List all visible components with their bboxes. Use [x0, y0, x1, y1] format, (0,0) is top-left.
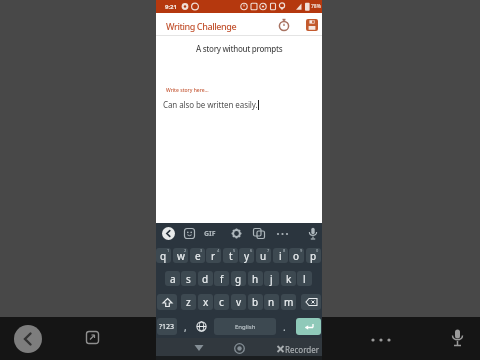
button[interactable]: f	[214, 271, 229, 286]
button[interactable]: g	[231, 271, 246, 286]
button[interactable]: e	[190, 248, 205, 263]
button[interactable]	[162, 227, 175, 240]
staticText: k	[286, 272, 292, 286]
button[interactable]: .	[279, 318, 290, 335]
button[interactable]	[307, 227, 319, 241]
staticText: 6	[250, 248, 253, 253]
staticText: s	[186, 272, 191, 286]
button[interactable]: x	[198, 294, 213, 310]
staticText: .	[283, 320, 286, 334]
button[interactable]	[277, 18, 291, 32]
button[interactable]: m	[281, 294, 296, 310]
staticText: c	[219, 295, 224, 309]
staticText: p	[310, 249, 317, 263]
staticText: v	[236, 295, 242, 309]
staticText: i	[279, 249, 282, 263]
button[interactable]: A story without prompts	[156, 42, 322, 54]
button[interactable]	[449, 328, 466, 349]
button[interactable]: q	[156, 248, 171, 263]
staticText: w	[177, 249, 185, 263]
button[interactable]: n	[264, 294, 279, 310]
staticText: Recorder	[285, 344, 320, 355]
button[interactable]: v	[231, 294, 246, 310]
staticText: 7	[267, 248, 270, 253]
button[interactable]: u	[256, 248, 271, 263]
button[interactable]	[156, 80, 322, 223]
staticText: ?123	[159, 322, 175, 332]
button[interactable]: English	[214, 318, 276, 335]
button[interactable]: ,	[179, 318, 191, 335]
button[interactable]	[86, 331, 99, 344]
staticText: Write story here...	[166, 87, 209, 94]
button[interactable]: z	[181, 294, 196, 310]
button[interactable]: ?123	[157, 318, 177, 335]
button[interactable]: c	[214, 294, 229, 310]
button[interactable]	[253, 228, 265, 239]
button[interactable]: l	[297, 271, 312, 286]
staticText: 9:21	[165, 3, 177, 11]
button[interactable]: s	[181, 271, 196, 286]
button[interactable]: y	[239, 248, 254, 263]
button[interactable]	[194, 344, 204, 352]
staticText: a	[170, 272, 176, 286]
button[interactable]	[184, 228, 195, 239]
staticText: x	[203, 295, 209, 309]
staticText: y	[244, 249, 250, 263]
staticText: f	[220, 272, 224, 286]
button[interactable]: k	[281, 271, 296, 286]
button[interactable]: i	[273, 248, 288, 263]
staticText: 2	[184, 248, 187, 253]
staticText: Can also be written easily.	[163, 99, 258, 110]
staticText: 0	[316, 248, 319, 253]
staticText: o	[293, 249, 300, 263]
staticText: 1	[167, 248, 170, 253]
button[interactable]: a	[165, 271, 180, 286]
button[interactable]: j	[264, 271, 279, 286]
staticText: u	[260, 249, 267, 263]
button[interactable]: GIF	[204, 229, 216, 239]
staticText: r	[211, 249, 216, 263]
button[interactable]: b	[248, 294, 263, 310]
button[interactable]	[14, 325, 42, 353]
staticText: ,	[184, 320, 187, 334]
staticText: g	[235, 272, 242, 286]
staticText: 3	[200, 248, 203, 253]
button[interactable]: r	[206, 248, 221, 263]
staticText: b	[252, 295, 259, 309]
button[interactable]: p	[306, 248, 321, 263]
staticText: q	[160, 249, 167, 263]
button[interactable]: h	[248, 271, 263, 286]
button[interactable]: t	[223, 248, 238, 263]
staticText: l	[303, 272, 306, 286]
staticText: 4	[217, 248, 220, 253]
staticText: 5	[233, 248, 236, 253]
staticText: m	[284, 295, 294, 309]
staticText: h	[252, 272, 259, 286]
button[interactable]	[157, 294, 177, 310]
button[interactable]	[276, 231, 290, 237]
staticText: Writing Challenge	[166, 20, 237, 32]
staticText: t	[229, 249, 233, 263]
button[interactable]: o	[289, 248, 304, 263]
staticText: d	[202, 272, 209, 286]
button[interactable]	[306, 19, 318, 31]
button[interactable]	[234, 343, 245, 354]
staticText: 8	[283, 248, 286, 253]
button[interactable]	[301, 294, 321, 310]
staticText: GIF	[204, 229, 216, 239]
staticText: e	[195, 249, 201, 263]
button[interactable]	[296, 318, 321, 335]
staticText: 9	[300, 248, 303, 253]
staticText: n	[268, 295, 275, 309]
staticText: A story without prompts	[196, 43, 283, 54]
staticText: 78%	[311, 3, 321, 10]
button[interactable]: d	[198, 271, 213, 286]
staticText: z	[186, 295, 191, 309]
button[interactable]	[194, 318, 209, 335]
staticText: j	[270, 272, 273, 286]
button[interactable]	[231, 228, 242, 239]
staticText: English	[235, 323, 256, 331]
button[interactable]: w	[173, 248, 188, 263]
